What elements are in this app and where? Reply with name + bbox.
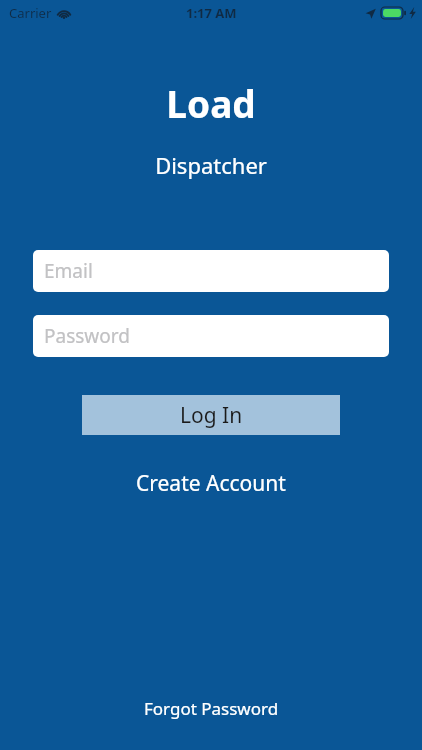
staticText: Email bbox=[44, 258, 93, 284]
staticText: Create Account bbox=[136, 469, 286, 498]
staticText: Log In bbox=[180, 401, 243, 430]
button[interactable]: Password bbox=[33, 315, 389, 357]
staticText: Carrier bbox=[9, 4, 52, 22]
button[interactable]: Create Account bbox=[118, 461, 304, 506]
button[interactable]: Log In bbox=[82, 395, 340, 435]
staticText: Forgot Password bbox=[144, 697, 279, 720]
staticText: 1:17 AM bbox=[186, 4, 237, 22]
button[interactable]: Forgot Password bbox=[128, 691, 295, 726]
staticText: Password bbox=[44, 323, 130, 349]
staticText: Load bbox=[166, 78, 256, 128]
button[interactable]: Email bbox=[33, 250, 389, 292]
staticText: Dispatcher bbox=[155, 150, 267, 180]
